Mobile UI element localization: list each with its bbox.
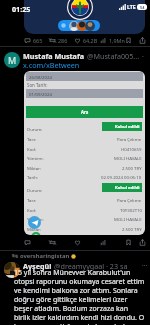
staticText: 01:25 [12, 4, 31, 14]
staticText: Yöntem: [27, 216, 44, 222]
button[interactable]: Like [74, 238, 81, 247]
staticText: Kabul edildi [115, 124, 140, 130]
staticText: MOLI HAVALE [114, 155, 142, 161]
staticText: Mustafa Mustafa [23, 51, 85, 61]
button[interactable] [24, 0, 145, 34]
button[interactable]: Repost [49, 238, 56, 247]
staticText: oversharingistan [20, 252, 70, 260]
staticText: 01/09/2024 [29, 91, 52, 97]
staticText: ··· [142, 261, 148, 270]
button[interactable] [58, 20, 100, 31]
button[interactable]: Views [100, 36, 125, 45]
staticText: Miktar: [27, 165, 42, 171]
staticText: Ayşegül [23, 261, 52, 271]
staticText: · 32 sn [142, 51, 150, 61]
button[interactable]: More options [139, 260, 150, 271]
button[interactable]: Repost [49, 36, 68, 45]
staticText: Kod: [27, 146, 37, 152]
staticText: H0410659 [121, 146, 142, 152]
staticText: Tarz: [27, 136, 37, 142]
button[interactable]: Like [74, 36, 98, 45]
button[interactable]: Reply [24, 238, 31, 247]
staticText: @dreamyygaal · 23 sa [54, 261, 128, 271]
staticText: LTE [127, 3, 136, 10]
button[interactable]: 26/08/2024 [24, 71, 145, 235]
staticText: M [8, 54, 17, 66]
staticText: 54 [140, 5, 145, 10]
button[interactable]: Views [100, 238, 107, 247]
staticText: Ara [81, 109, 89, 115]
staticText: Yöntem: [27, 155, 44, 161]
staticText: @Mustafa005... [87, 51, 140, 61]
staticText: MOLI HAVALE [114, 216, 142, 222]
button[interactable]: Bookmark [124, 36, 133, 45]
staticText: Kod: [27, 207, 37, 213]
button[interactable]: Share [138, 36, 147, 45]
staticText: 1,9Mn [109, 37, 125, 44]
staticText: Kabul edildi [115, 185, 140, 191]
button[interactable] [4, 262, 20, 278]
button[interactable]: Reply [24, 36, 43, 45]
staticText: 26/08/2024 [29, 74, 52, 80]
staticText: 15 yıl sonra Münevver Karabulut'un otops… [14, 268, 146, 325]
staticText: Durum: [27, 187, 43, 193]
button[interactable]: Bookmark [124, 238, 133, 247]
staticText: 286 [58, 37, 68, 44]
staticText: 2.500 TRY [122, 226, 142, 232]
staticText: 64,2B [83, 37, 98, 44]
staticText: Tarz: [27, 197, 37, 203]
staticText: x.com/xBetween [23, 60, 80, 70]
staticText: 02.09.2024 00:06:10 [101, 174, 142, 180]
staticText: Para Çekme [117, 136, 142, 142]
staticText: Tarih: [27, 174, 39, 180]
staticText: Son Tarih: [27, 82, 48, 88]
button[interactable]: M [4, 52, 20, 68]
staticText: Para Çekme [117, 197, 142, 203]
staticText: 2.500 TRY [122, 165, 142, 171]
staticText: 665 [33, 37, 43, 44]
staticText: Miktar: [27, 226, 42, 232]
button[interactable]: Ara [26, 106, 143, 118]
staticText: Durum: [27, 126, 43, 132]
button[interactable]: Share [138, 238, 147, 247]
staticText: T0Y302T10 [120, 207, 142, 213]
